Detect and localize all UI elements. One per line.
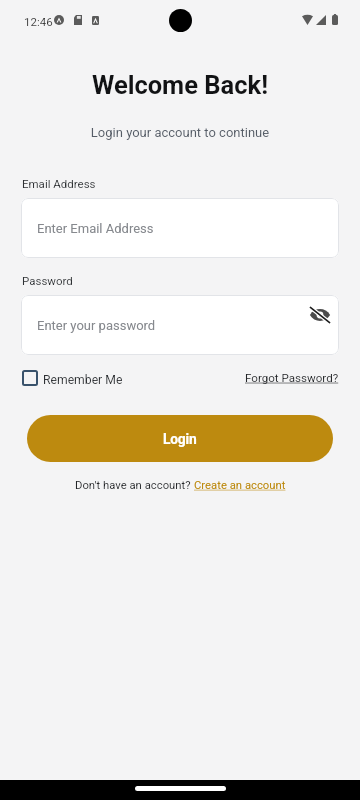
staticText: Enter Email Address bbox=[37, 221, 154, 236]
staticText: Remember Me bbox=[43, 373, 123, 387]
staticText: Create an account bbox=[194, 479, 286, 492]
staticText: Enter your password bbox=[37, 318, 156, 333]
button[interactable]: Enter Email Address bbox=[21, 198, 339, 258]
staticText: 12:46 bbox=[24, 15, 53, 28]
button[interactable]: Login bbox=[27, 415, 333, 462]
button[interactable]: Forgot Password? bbox=[245, 371, 339, 385]
staticText: Password bbox=[22, 274, 73, 287]
staticText: Email Address bbox=[22, 177, 96, 190]
staticText: Don't have an account? bbox=[75, 479, 194, 492]
staticText: Login bbox=[163, 431, 197, 447]
staticText: Welcome Back! bbox=[0, 70, 360, 100]
button[interactable]: Enter your password bbox=[21, 295, 339, 355]
button[interactable]: Toggle password visibility bbox=[305, 300, 335, 330]
button[interactable]: Remember Me bbox=[21, 372, 123, 388]
staticText: Login your account to continue bbox=[0, 125, 360, 140]
staticText: Forgot Password? bbox=[245, 371, 339, 385]
button[interactable]: Create an account bbox=[194, 479, 286, 492]
